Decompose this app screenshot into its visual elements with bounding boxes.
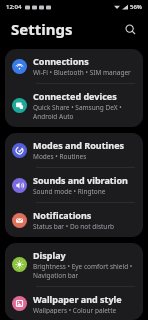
button[interactable]: Sounds and vibration (5, 168, 143, 202)
staticText: Modes • Routines (33, 152, 87, 161)
staticText: Notifications (33, 209, 92, 221)
staticText: Quick Share • Samsung DeX • Android Auto (33, 103, 136, 121)
staticText: 56% (130, 3, 142, 11)
staticText: Settings (11, 19, 73, 39)
staticText: Sound mode • Ringtone (33, 187, 106, 196)
staticText: 12:04 (6, 3, 22, 11)
button[interactable]: Notifications (5, 203, 143, 237)
staticText: Status bar • Do not disturb (33, 222, 115, 231)
staticText: Wallpaper and style (33, 293, 122, 305)
staticText: Connected devices (33, 90, 117, 102)
button[interactable]: Wallpaper and style (5, 287, 143, 320)
button[interactable]: Connections (5, 49, 143, 83)
staticText: Sounds and vibration (33, 174, 128, 186)
button[interactable]: Display (5, 243, 143, 286)
staticText: Connections (33, 55, 89, 67)
button[interactable]: Modes and Routines (5, 133, 143, 167)
staticText: Brightness • Eye comfort shield • Naviga… (33, 262, 136, 280)
staticText: Wallpapers • Colour palette (33, 306, 117, 314)
staticText: Display (33, 249, 66, 261)
staticText: Wi-Fi • Bluetooth • SIM manager (33, 68, 131, 77)
button[interactable]: Search (120, 19, 140, 39)
button[interactable]: Connected devices (5, 84, 143, 127)
staticText: Modes and Routines (33, 139, 125, 151)
